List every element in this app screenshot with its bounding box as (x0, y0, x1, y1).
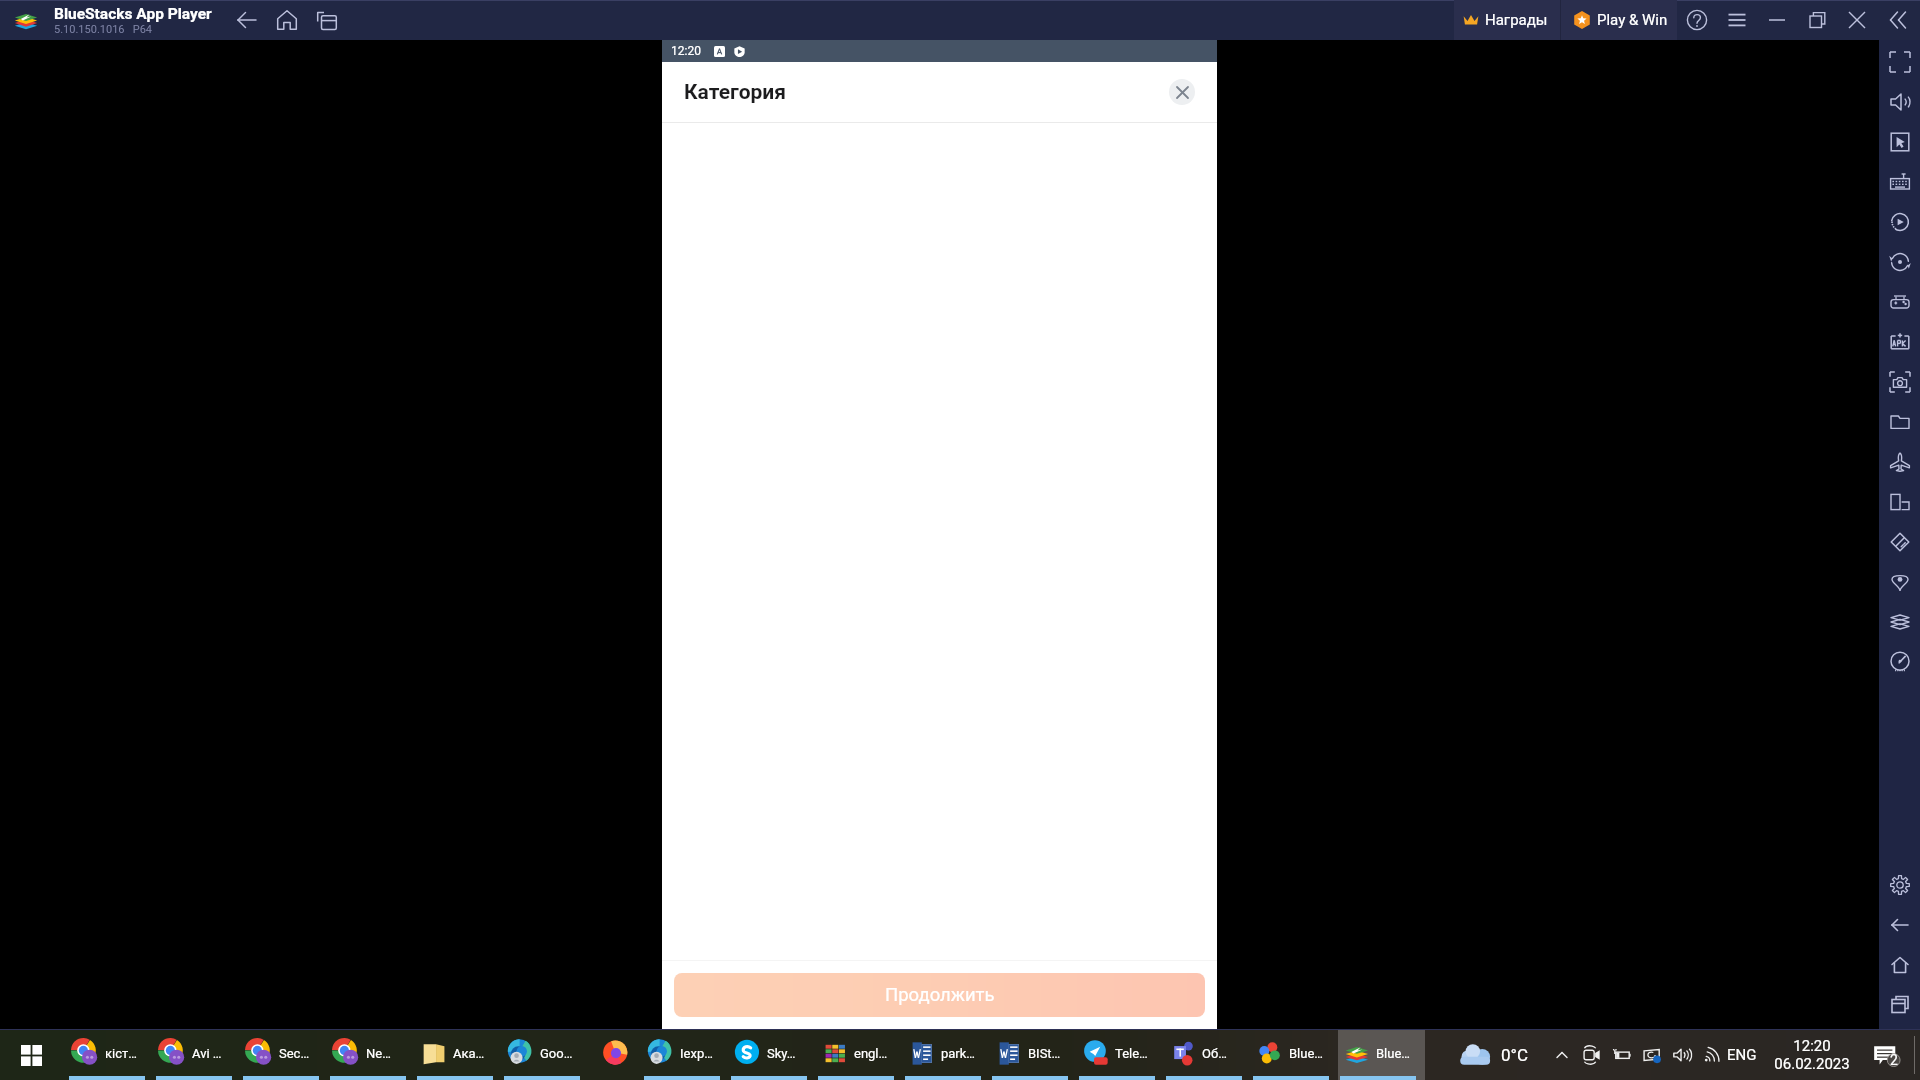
staticText: Play & Win (1597, 11, 1668, 29)
button[interactable]: Ne… (328, 1030, 415, 1080)
button[interactable]: Performance (1880, 642, 1920, 682)
staticText: Tele… (1115, 1046, 1148, 1061)
button[interactable]: Macro recorder (1880, 202, 1920, 242)
button[interactable]: Cursor (1880, 122, 1920, 162)
button[interactable]: Minimize (1757, 0, 1797, 40)
button[interactable]: Eco mode (1880, 522, 1920, 562)
button[interactable]: Network (1697, 1030, 1727, 1080)
button[interactable]: Start (7, 1030, 55, 1080)
staticText: BISt… (1028, 1046, 1061, 1061)
button[interactable]: Close (1837, 0, 1877, 40)
staticText: park… (941, 1046, 976, 1061)
button[interactable]: Награды (1454, 0, 1560, 40)
staticText: BlueStacks App Player (54, 5, 212, 23)
button[interactable]: Install APK (1880, 322, 1920, 362)
button[interactable]: кіст… (67, 1030, 154, 1080)
staticText: Sec… (279, 1046, 310, 1061)
button[interactable]: Location (1880, 562, 1920, 602)
staticText: Продолжить (885, 984, 995, 1006)
button[interactable]: Firefox (589, 1030, 642, 1080)
staticText: Ne… (366, 1046, 391, 1061)
button[interactable]: Blue… (1338, 1030, 1425, 1080)
staticText: Об… (1202, 1046, 1227, 1061)
button[interactable]: Fullscreen (1880, 42, 1920, 82)
staticText: Iexp… (680, 1046, 713, 1061)
staticText: 0°C (1501, 1045, 1528, 1065)
button[interactable]: engl… (816, 1030, 903, 1080)
button[interactable]: Об… (1164, 1030, 1251, 1080)
staticText: Награды (1485, 11, 1548, 29)
button[interactable]: Keyboard controls (1880, 162, 1920, 202)
button[interactable]: Collapse sidebar (1877, 0, 1917, 40)
button[interactable]: Back (227, 0, 267, 40)
button[interactable]: ENG (1727, 1030, 1771, 1080)
staticText: 12:20 (1793, 1037, 1831, 1055)
button[interactable]: Media manager (1880, 402, 1920, 442)
button[interactable]: 0°C (1451, 1030, 1536, 1080)
button[interactable]: BISt… (990, 1030, 1077, 1080)
button[interactable]: Play & Win (1561, 0, 1677, 40)
button[interactable]: Camera (1577, 1030, 1607, 1080)
button[interactable]: Sec… (241, 1030, 328, 1080)
button[interactable]: Close (1169, 79, 1195, 105)
staticText: Sky… (767, 1046, 796, 1061)
staticText: 06.02.2023 (1774, 1055, 1850, 1073)
staticText: Ака… (453, 1046, 485, 1061)
button[interactable]: Volume (1880, 82, 1920, 122)
button[interactable]: Battery (1607, 1030, 1637, 1080)
button[interactable]: Shake (1880, 442, 1920, 482)
button[interactable]: Avi … (154, 1030, 241, 1080)
button[interactable]: Menu (1717, 0, 1757, 40)
button[interactable]: Screenshot (1880, 362, 1920, 402)
button[interactable]: Multi instance manager (307, 0, 347, 40)
staticText: 12:20 (671, 44, 701, 58)
button[interactable]: Ака… (415, 1030, 502, 1080)
staticText: Goo… (540, 1046, 573, 1061)
button[interactable]: Show hidden icons (1547, 1030, 1577, 1080)
button[interactable]: park… (903, 1030, 990, 1080)
button[interactable]: Tele… (1077, 1030, 1164, 1080)
button[interactable]: Multi window (1880, 482, 1920, 522)
button[interactable]: Layers (1880, 602, 1920, 642)
staticText: 2 (1890, 1052, 1898, 1068)
button[interactable]: Продолжить (674, 973, 1205, 1017)
staticText: 5.10.150.1016 P64 (54, 23, 153, 36)
button[interactable]: Blue… (1251, 1030, 1338, 1080)
button[interactable]: Volume (1667, 1030, 1697, 1080)
button[interactable]: Recents (1880, 985, 1920, 1025)
staticText: Категория (684, 80, 787, 105)
button[interactable]: Sky… (729, 1030, 816, 1080)
button[interactable]: 12:20 (1771, 1030, 1853, 1080)
button[interactable]: Help (1677, 0, 1717, 40)
button[interactable]: Settings (1880, 865, 1920, 905)
button[interactable]: Back (1880, 905, 1920, 945)
button[interactable]: Home (267, 0, 307, 40)
button[interactable]: Rotate (1880, 242, 1920, 282)
button[interactable]: Restore (1797, 0, 1837, 40)
button[interactable]: Game controls (1880, 282, 1920, 322)
staticText: кіст… (105, 1046, 137, 1061)
staticText: Blue… (1376, 1046, 1411, 1061)
button[interactable]: Goo… (502, 1030, 589, 1080)
staticText: ENG (1727, 1046, 1757, 1064)
button[interactable]: Display settings (1637, 1030, 1667, 1080)
staticText: Blue… (1289, 1046, 1324, 1061)
button[interactable]: Home (1880, 945, 1920, 985)
staticText: engl… (854, 1046, 888, 1061)
button[interactable]: Notifications (1869, 1030, 1903, 1080)
staticText: Avi … (192, 1046, 222, 1061)
button[interactable]: Iexp… (642, 1030, 729, 1080)
